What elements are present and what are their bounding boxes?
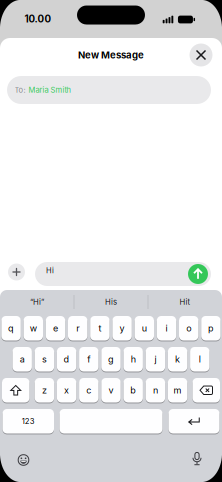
button[interactable]: e xyxy=(46,316,65,340)
button[interactable]: Shift xyxy=(2,378,29,402)
button[interactable]: f xyxy=(79,347,98,371)
button[interactable]: w xyxy=(24,316,43,340)
button[interactable]: z xyxy=(35,378,54,402)
staticText: o xyxy=(186,323,191,334)
staticText: p xyxy=(208,323,214,334)
button[interactable]: n xyxy=(146,378,165,402)
staticText: s xyxy=(42,354,47,365)
staticText: c xyxy=(86,385,91,396)
staticText: w xyxy=(30,323,37,334)
button[interactable]: Delete xyxy=(192,378,220,402)
button[interactable]: His xyxy=(76,292,146,312)
button[interactable]: p xyxy=(201,316,221,340)
staticText: t xyxy=(98,323,101,334)
button[interactable]: v xyxy=(101,378,121,402)
staticText: z xyxy=(42,385,47,396)
staticText: a xyxy=(20,354,25,365)
staticText: k xyxy=(175,354,180,365)
button[interactable]: b xyxy=(123,378,143,402)
staticText: New Message xyxy=(78,49,144,61)
button[interactable]: Close xyxy=(189,43,212,66)
staticText: e xyxy=(53,323,58,334)
button[interactable]: q xyxy=(1,316,21,340)
staticText: u xyxy=(142,323,147,334)
staticText: g xyxy=(108,354,114,365)
button[interactable]: y xyxy=(112,316,132,340)
button[interactable]: Send xyxy=(188,264,208,284)
button[interactable]: x xyxy=(57,378,76,402)
staticText: i xyxy=(165,323,167,334)
staticText: q xyxy=(8,323,14,334)
button[interactable]: l xyxy=(190,347,209,371)
button[interactable]: c xyxy=(79,378,98,402)
button[interactable]: u xyxy=(135,316,154,340)
staticText: h xyxy=(131,354,136,365)
button[interactable]: Space xyxy=(59,409,162,433)
staticText: f xyxy=(87,354,90,365)
staticText: x xyxy=(64,385,69,396)
staticText: 123 xyxy=(22,417,35,426)
button[interactable]: i xyxy=(157,316,176,340)
staticText: y xyxy=(120,323,125,334)
button[interactable]: t xyxy=(90,316,110,340)
button[interactable]: g xyxy=(101,347,121,371)
button[interactable]: Hit xyxy=(150,292,220,312)
button[interactable]: r xyxy=(68,316,87,340)
button[interactable]: Return xyxy=(168,409,219,433)
button[interactable]: Add attachment xyxy=(8,263,25,280)
staticText: 10.00 xyxy=(24,13,51,25)
staticText: Hi xyxy=(46,266,54,275)
button[interactable]: o xyxy=(179,316,198,340)
button[interactable]: j xyxy=(146,347,165,371)
button[interactable]: s xyxy=(35,347,54,371)
staticText: His xyxy=(105,297,117,307)
button[interactable]: Dictation xyxy=(191,452,202,466)
button[interactable]: Numbers xyxy=(2,409,54,433)
staticText: j xyxy=(154,354,156,365)
staticText: “Hi” xyxy=(30,297,44,307)
staticText: Maria Smith xyxy=(28,85,70,95)
staticText: To: xyxy=(14,85,25,95)
staticText: b xyxy=(130,385,136,396)
staticText: l xyxy=(199,354,201,365)
staticText: m xyxy=(174,385,182,396)
button[interactable]: m xyxy=(168,378,187,402)
button[interactable]: h xyxy=(123,347,143,371)
staticText: Hit xyxy=(179,297,190,307)
button[interactable]: k xyxy=(168,347,187,371)
button[interactable]: “Hi” xyxy=(2,292,72,312)
staticText: n xyxy=(153,385,158,396)
button[interactable]: d xyxy=(57,347,76,371)
staticText: d xyxy=(64,354,70,365)
staticText: r xyxy=(76,323,79,334)
button[interactable]: a xyxy=(12,347,32,371)
button[interactable]: Emoji xyxy=(17,454,29,466)
staticText: v xyxy=(108,385,113,396)
